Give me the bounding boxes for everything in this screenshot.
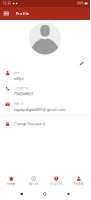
- button[interactable]: Name: [0, 68, 90, 84]
- staticText: Name: [13, 71, 20, 74]
- staticText: ?: [55, 176, 57, 181]
- button[interactable]: Menu: [2, 9, 11, 18]
- button[interactable]: Explore: [22, 172, 45, 188]
- button[interactable]: Profile: [67, 172, 90, 188]
- staticText: Profile: [16, 11, 29, 16]
- staticText: vajpayidigitial001@gmail.com: [13, 107, 65, 112]
- staticText: 13:36: [2, 2, 11, 5]
- staticText: Explore: [29, 182, 39, 185]
- staticText: Email Id: [13, 102, 23, 105]
- button[interactable]: Email Id: [0, 99, 90, 115]
- button[interactable]: Edit profile: [77, 59, 86, 68]
- staticText: 7942048831: [13, 91, 33, 96]
- staticText: Home: [7, 182, 15, 185]
- staticText: Helpline: [50, 182, 63, 185]
- staticText: aditya: [13, 75, 23, 81]
- staticText: Contact No: [13, 86, 28, 90]
- staticText: 88%: [77, 2, 83, 5]
- staticText: Change Password: [13, 121, 44, 126]
- staticText: Profile: [74, 182, 84, 185]
- button[interactable]: Change Password: [0, 115, 90, 129]
- button[interactable]: ?: [45, 172, 67, 188]
- button[interactable]: Home: [0, 172, 22, 188]
- button[interactable]: Contact No: [0, 84, 90, 99]
